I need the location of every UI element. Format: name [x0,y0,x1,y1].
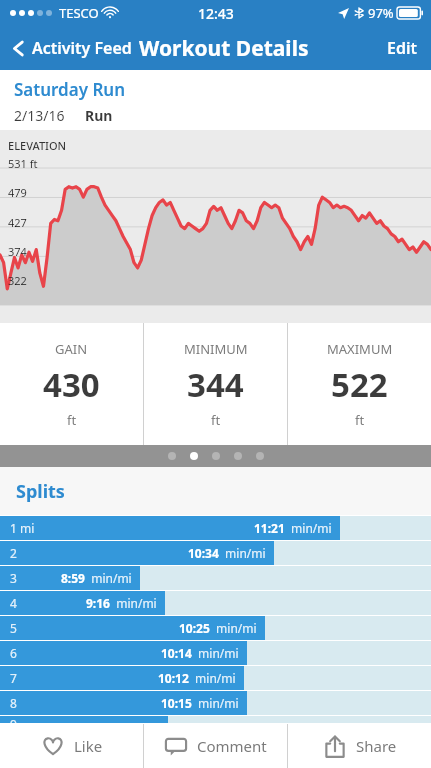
staticText: 1 mi [10,520,35,536]
staticText: 374 [8,244,27,259]
staticText: 97% [368,4,394,22]
staticText: 10:34 min/mi [188,545,266,561]
staticText: 10:14 min/mi [161,645,239,661]
staticText: 344 [187,362,244,407]
staticText: 322 [8,273,27,288]
staticText: 10:12 min/mi [158,670,236,686]
button[interactable]: 2 [0,540,431,565]
button[interactable]: 3 [0,565,431,590]
staticText: ft [211,411,221,429]
button[interactable]: 5 [0,615,431,640]
staticText: MINIMUM [184,340,248,358]
staticText: Saturday Run [14,78,126,101]
staticText: Splits [16,479,65,504]
button[interactable]: Share [288,723,431,768]
staticText: 9 [10,716,17,723]
staticText: 9:16 min/mi [86,595,157,611]
staticText: 522 [331,362,388,407]
staticText: 430 [43,362,100,407]
button[interactable]: Like [0,723,143,768]
staticText: 12:43 [198,4,234,23]
button[interactable]: 4 [0,590,431,615]
staticText: 11:21 min/mi [254,520,332,536]
staticText: 10:15 min/mi [161,695,239,711]
staticText: 4 [10,595,17,611]
staticText: ft [67,411,77,429]
staticText: Activity Feed [32,37,132,59]
staticText: 8 [10,695,17,711]
staticText: ft [355,411,365,429]
staticText: 10:25 min/mi [179,620,257,636]
staticText: 2 [10,545,17,561]
staticText: 2/13/16 [14,106,65,125]
staticText: GAIN [55,340,88,358]
staticText: 479 [8,185,27,200]
staticText: Like [74,736,103,756]
button[interactable]: MINIMUM [144,323,287,445]
staticText: 7 [10,670,17,686]
staticText: Comment [197,736,267,756]
staticText: 3 [10,570,17,586]
staticText: TESCO [59,4,99,22]
button[interactable]: Comment [144,723,287,768]
button[interactable]: Activity Feed [0,37,138,59]
staticText: Workout Details [139,34,309,63]
staticText: ELEVATION [8,138,67,153]
button[interactable]: Edit [373,27,431,69]
button[interactable]: MAXIMUM [288,323,431,445]
staticText: MAXIMUM [327,340,393,358]
button[interactable]: 1 mi [0,515,431,540]
button[interactable]: 9 [0,715,431,723]
staticText: Run [85,106,113,125]
button[interactable]: 7 [0,665,431,690]
staticText: 6 [10,645,17,661]
button[interactable]: GAIN [0,323,143,445]
staticText: 427 [8,215,27,230]
staticText: 8:59 min/mi [61,570,132,586]
staticText: Share [356,736,397,756]
button[interactable]: 8 [0,690,431,715]
staticText: 5 [10,620,17,636]
button[interactable]: 6 [0,640,431,665]
staticText: 531 ft [8,156,38,171]
